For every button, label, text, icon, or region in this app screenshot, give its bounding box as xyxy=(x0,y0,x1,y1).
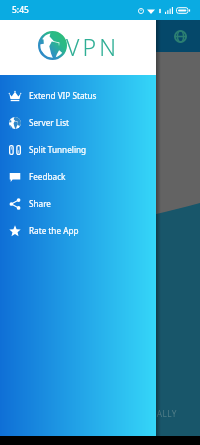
button[interactable]: Share xyxy=(0,190,156,217)
button[interactable]: Select server location xyxy=(171,27,189,45)
staticText: Extend VIP Status xyxy=(29,90,97,101)
button[interactable]: Extend VIP Status xyxy=(0,82,156,109)
staticText: Server List xyxy=(29,117,70,128)
staticText: Rate the App xyxy=(29,225,79,236)
button[interactable]: Rate the App xyxy=(0,217,156,244)
staticText: Share xyxy=(29,198,51,209)
staticText: CONNECT AUTOMATICALLY xyxy=(62,408,177,419)
button[interactable]: Feedback xyxy=(0,163,156,190)
staticText: Split Tunneling xyxy=(29,144,87,155)
staticText: VPN xyxy=(66,31,120,62)
button[interactable]: Server List xyxy=(0,109,156,136)
staticText: 5:45 xyxy=(12,4,29,16)
button[interactable]: Split Tunneling xyxy=(0,136,156,163)
staticText: Feedback xyxy=(29,171,66,182)
